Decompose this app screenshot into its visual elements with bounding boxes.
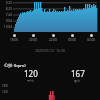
staticText: 02:00 xyxy=(87,38,96,42)
staticText: 167 xyxy=(71,68,85,79)
button[interactable]: 00:00 xyxy=(64,34,80,42)
button[interactable]: 22:00 xyxy=(45,34,61,42)
staticText: 9.25 xyxy=(1,1,12,5)
staticText: 00:00 xyxy=(68,38,77,42)
button[interactable]: 18:00 xyxy=(6,34,22,42)
staticText: 2020/06/12 16:30 xyxy=(35,48,66,53)
staticText: 120 xyxy=(2,90,8,94)
staticText: 7.44 xyxy=(1,13,12,17)
staticText: 10.04 xyxy=(1,25,12,29)
staticText: 20:00 xyxy=(29,38,38,42)
staticText: 平均 xyxy=(27,79,34,83)
staticText: 心拍 (bpm) xyxy=(4,62,26,68)
button[interactable]: 02:00 xyxy=(83,34,99,42)
staticText: 9.04 xyxy=(1,19,12,23)
staticText: 120 xyxy=(24,68,38,79)
staticText: 22:00 xyxy=(49,38,58,42)
button[interactable]: 20:00 xyxy=(25,34,41,42)
staticText: 8.25 xyxy=(1,7,12,11)
staticText: 18:00 xyxy=(10,38,19,42)
staticText: 最大 xyxy=(74,79,81,83)
staticText: 180 xyxy=(2,84,8,88)
